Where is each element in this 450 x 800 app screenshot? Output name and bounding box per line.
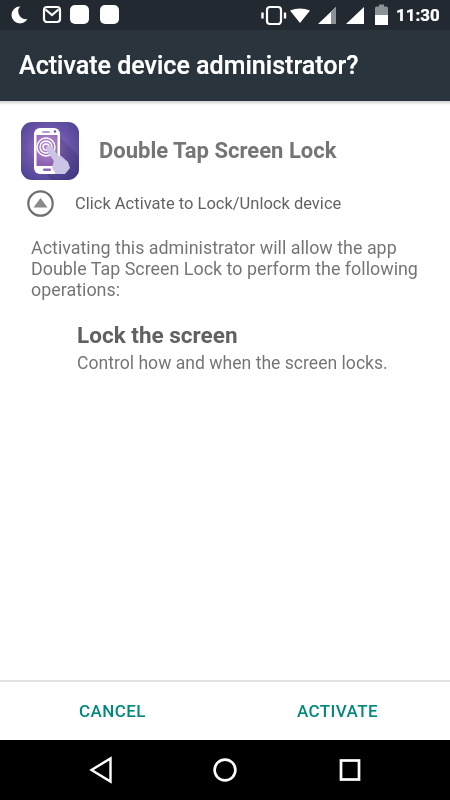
button[interactable]: CANCEL [0, 682, 225, 740]
staticText: CANCEL [79, 701, 146, 721]
staticText: Control how and when the screen locks. [77, 353, 388, 374]
button[interactable]: ACTIVATE [225, 682, 450, 740]
button[interactable] [201, 746, 249, 794]
staticText: ACTIVATE [297, 701, 378, 721]
staticText: Double Tap Screen Lock [99, 138, 337, 164]
staticText: 11:30 [396, 5, 440, 25]
button[interactable]: Click Activate to Lock/Unlock device [27, 190, 450, 217]
staticText: Click Activate to Lock/Unlock device [75, 194, 342, 213]
button[interactable] [326, 746, 374, 794]
button[interactable] [77, 746, 125, 794]
staticText: Activating this administrator will allow… [31, 237, 418, 300]
staticText: Lock the screen [77, 322, 238, 348]
staticText: Activate device administrator? [19, 51, 359, 80]
